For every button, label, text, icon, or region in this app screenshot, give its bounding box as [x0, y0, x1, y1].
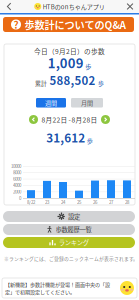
- staticText: 31,612: [46, 129, 85, 146]
- staticText: ※ランキングには、ご登録のニックネームが表示されます。: [4, 255, 138, 262]
- staticText: 歩数計についてのQ&A: [24, 17, 125, 32]
- staticText: 2000: [13, 188, 21, 195]
- button[interactable]: 週間: [36, 98, 66, 107]
- staticText: ランキング: [59, 238, 89, 247]
- staticText: 8月22日 - 8月28日: [41, 115, 97, 124]
- staticText: 26: [93, 199, 97, 205]
- staticText: 8/22: [27, 199, 35, 205]
- button[interactable]: 月間: [71, 98, 103, 107]
- staticText: 歩: [87, 136, 93, 145]
- staticText: 10000: [11, 163, 21, 169]
- staticText: 週間: [45, 98, 57, 107]
- staticText: 月間: [81, 98, 93, 107]
- staticText: 8000: [13, 169, 21, 176]
- staticText: 【新機能】歩数計機能が登場！画面中央の「設定」で初期設定してください。: [5, 281, 110, 295]
- staticText: 設定: [68, 212, 80, 221]
- staticText: 23: [45, 199, 49, 205]
- staticText: 24: [61, 199, 65, 205]
- staticText: 1,009: [48, 53, 84, 72]
- staticText: ?: [13, 17, 18, 32]
- button[interactable]: 閉じる: [122, 0, 138, 13]
- button[interactable]: 次の週: [101, 115, 110, 124]
- button[interactable]: 歩数履歴一覧: [3, 224, 135, 235]
- staticText: 今日（9月2日）の歩数: [34, 46, 105, 56]
- staticText: 28: [125, 199, 129, 205]
- staticText: HTBのonちゃんアプリ: [43, 2, 105, 11]
- staticText: 4000: [13, 182, 21, 188]
- staticText: 6000: [13, 176, 21, 182]
- button[interactable]: 前の週: [29, 115, 38, 124]
- button[interactable]: 戻る: [1, 0, 17, 13]
- button[interactable]: ランキング: [3, 237, 135, 248]
- button[interactable]: ?: [3, 17, 134, 32]
- button[interactable]: 設定: [3, 211, 135, 222]
- staticText: 25: [77, 199, 81, 205]
- staticText: 歩: [98, 79, 104, 87]
- staticText: 累計: [35, 79, 47, 87]
- staticText: 歩: [85, 62, 91, 71]
- staticText: 0: [19, 195, 21, 201]
- staticText: 588,502: [49, 72, 95, 88]
- staticText: 歩数履歴一覧: [55, 225, 91, 234]
- staticText: 27: [109, 199, 113, 205]
